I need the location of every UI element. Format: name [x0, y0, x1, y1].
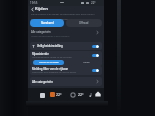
button[interactable]: Melding filter van de rijbaan: [32, 66, 99, 75]
button[interactable]: Alle categorieën: [31, 29, 99, 35]
button[interactable]: 22°: [56, 92, 62, 97]
button[interactable]: Toggle: [92, 69, 99, 72]
button[interactable]: Seat heating driver: [50, 92, 55, 97]
staticText: Melding filter van de rijbaan: [32, 67, 69, 71]
button[interactable]: Climate: [70, 92, 75, 97]
staticText: Rijden: [35, 6, 48, 12]
other: Back: [30, 7, 35, 12]
button[interactable]: Toggle: [92, 45, 99, 48]
button[interactable]: Alle categorieën: [32, 77, 99, 86]
button[interactable]: Rijassistentie: [32, 51, 99, 59]
staticText: 22°: [56, 92, 62, 97]
staticText: 19:55: [30, 1, 38, 5]
staticText: 22°: [91, 1, 96, 5]
button[interactable]: Home: [95, 91, 101, 97]
button[interactable]: 22°: [78, 92, 84, 97]
staticText: Uitleg: [83, 61, 90, 64]
staticText: Stel je rijmodus in en beheer rijhulpsys…: [31, 13, 95, 16]
button[interactable]: Back: [30, 6, 48, 12]
staticText: Houdt automatisch afstand tot de voorlig…: [32, 56, 72, 59]
staticText: Waarschuwt als je onbedoeld van rijstroo…: [32, 71, 77, 74]
staticText: Rijassistentie: [32, 52, 49, 56]
staticText: 22°: [78, 92, 84, 97]
button[interactable]: Media: [88, 92, 93, 97]
button[interactable]: Toggle: [92, 54, 99, 57]
staticText: Alle categorieën: [32, 80, 53, 84]
button[interactable]: Apps: [40, 93, 45, 98]
staticText: Alle categorieën: [31, 30, 51, 34]
staticText: Standaard: [41, 21, 54, 25]
button[interactable]: Veiligheidsinstelling: [32, 42, 99, 50]
button[interactable]: Offroad: [66, 19, 102, 27]
staticText: en veiligheid. Deze instellingen gelden …: [31, 18, 88, 21]
staticText: Offroad: [79, 21, 89, 25]
button[interactable]: Uitleg: [81, 60, 92, 65]
button[interactable]: Standaard: [30, 19, 64, 27]
button[interactable]: Starten en instellen: [33, 60, 64, 65]
staticText: Veiligheidsinstelling: [37, 44, 63, 48]
staticText: Actieve rijhulpsystemen in deze rijmodus: [31, 35, 70, 38]
staticText: Starten en instellen: [39, 61, 59, 64]
